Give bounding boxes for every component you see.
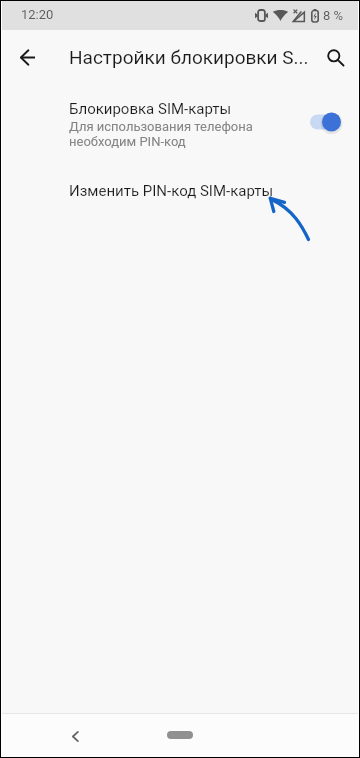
button[interactable]: Изменить PIN-код SIM-карты [2,182,358,200]
staticText: Для использования телефона необходим PIN… [69,119,253,149]
button[interactable]: Назад [58,719,92,753]
staticText: 12:20 [21,7,54,22]
button[interactable]: Главный экран [167,731,193,739]
staticText: Блокировка SIM-карты [69,100,232,118]
staticText: Настройки блокировки S... [69,46,309,68]
button[interactable]: Поиск [316,38,354,76]
button[interactable]: Назад [8,38,46,76]
button[interactable]: Блокировка SIM-карты [2,100,358,149]
staticText: 8 % [323,8,344,23]
staticText: Изменить PIN-код SIM-карты [69,182,274,200]
